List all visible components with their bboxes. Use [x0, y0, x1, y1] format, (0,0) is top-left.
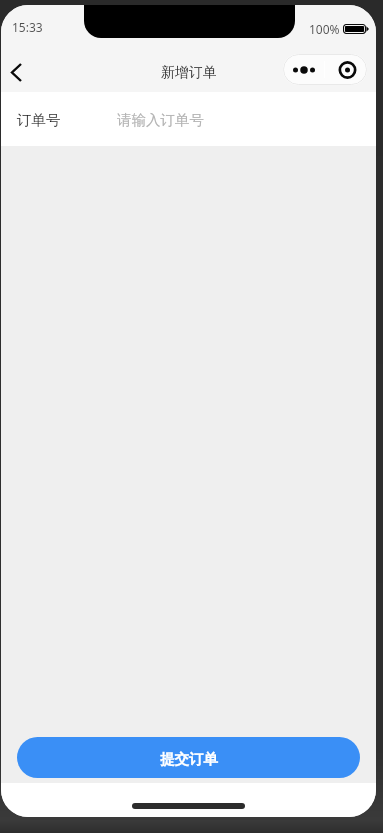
- staticText: 提交订单: [160, 750, 218, 768]
- staticText: 15:33: [12, 19, 43, 35]
- staticText: 订单号: [17, 111, 61, 129]
- button[interactable]: 订单号: [1, 92, 376, 146]
- button[interactable]: Menu and close: [283, 54, 367, 85]
- button[interactable]: Back: [5, 55, 28, 89]
- staticText: 100%: [309, 21, 340, 37]
- staticText: 新增订单: [161, 64, 217, 82]
- button[interactable]: 提交订单: [17, 737, 360, 778]
- staticText: 请输入订单号: [117, 111, 204, 129]
